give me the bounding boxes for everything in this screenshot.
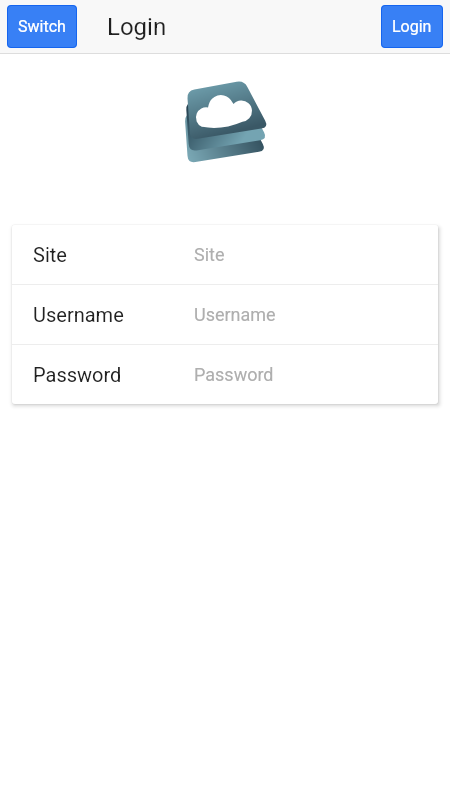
button[interactable]: Site xyxy=(12,225,438,284)
staticText: Password xyxy=(194,364,274,385)
staticText: Site xyxy=(194,244,225,265)
staticText: Login xyxy=(107,13,167,41)
button[interactable]: Password xyxy=(12,345,438,404)
button[interactable]: Login xyxy=(381,5,443,48)
staticText: Site xyxy=(33,243,67,266)
staticText: Username xyxy=(194,304,276,325)
staticText: Password xyxy=(33,363,122,386)
button[interactable]: Switch xyxy=(7,5,77,48)
button[interactable]: Username xyxy=(12,285,438,344)
staticText: Username xyxy=(33,303,124,326)
staticText: Login xyxy=(392,17,432,36)
staticText: Switch xyxy=(18,17,66,36)
